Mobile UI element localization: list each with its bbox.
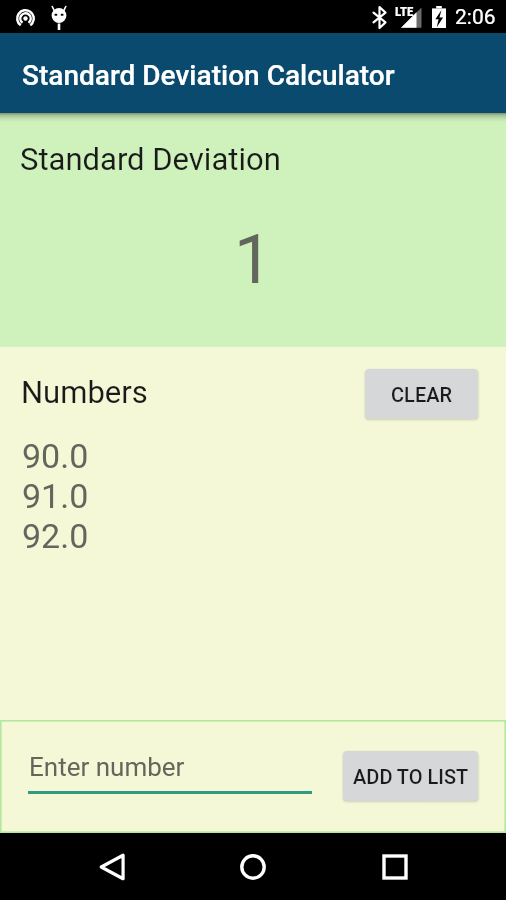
- staticText: Standard Deviation Calculator: [22, 59, 395, 92]
- button[interactable]: Recent apps: [360, 833, 430, 900]
- staticText: 90.0: [22, 436, 89, 476]
- staticText: LTE: [395, 4, 414, 19]
- staticText: Standard Deviation: [20, 141, 281, 177]
- button[interactable]: ADD TO LIST: [343, 751, 478, 801]
- button[interactable]: Home: [218, 833, 288, 900]
- button[interactable]: Back: [78, 833, 148, 900]
- staticText: 2:06: [455, 5, 496, 30]
- button[interactable]: CLEAR: [365, 369, 478, 419]
- staticText: 1: [0, 220, 506, 300]
- staticText: 91.0: [22, 476, 89, 516]
- staticText: 92.0: [22, 516, 89, 556]
- staticText: Enter number: [29, 752, 185, 782]
- staticText: CLEAR: [391, 383, 452, 406]
- staticText: ADD TO LIST: [353, 765, 469, 788]
- staticText: Numbers: [21, 374, 148, 410]
